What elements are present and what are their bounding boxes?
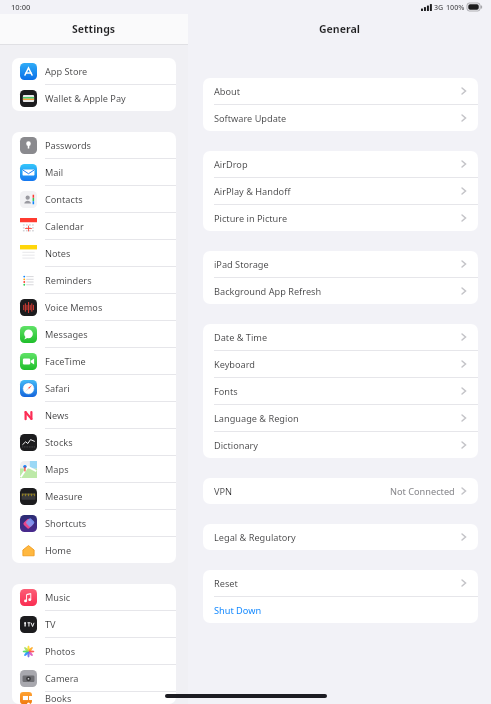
staticText: Mail xyxy=(45,166,64,179)
staticText: Voice Memos xyxy=(45,301,103,314)
button[interactable]: About xyxy=(203,78,478,104)
button[interactable]: Fonts xyxy=(203,378,478,404)
staticText: FaceTime xyxy=(45,355,86,368)
button[interactable]: Language & Region xyxy=(203,405,478,431)
staticText: Camera xyxy=(45,672,79,685)
staticText: Dictionary xyxy=(214,439,259,452)
button[interactable]: Safari xyxy=(12,375,176,401)
button[interactable]: Software Update xyxy=(203,105,478,131)
button[interactable]: Passwords xyxy=(12,132,176,158)
staticText: 10:00 xyxy=(11,2,31,12)
staticText: Maps xyxy=(45,463,69,476)
other: Home indicator xyxy=(165,694,327,698)
staticText: Messages xyxy=(45,328,88,341)
staticText: VPN xyxy=(214,485,233,498)
staticText: Legal & Regulatory xyxy=(214,531,296,544)
staticText: Books xyxy=(45,692,72,704)
staticText: About xyxy=(214,85,241,98)
button[interactable]: TV xyxy=(12,611,176,637)
staticText: Photos xyxy=(45,645,76,658)
staticText: Not Connected xyxy=(390,485,455,498)
staticText: App Store xyxy=(45,65,88,78)
button[interactable]: AirPlay & Handoff xyxy=(203,178,478,204)
staticText: Measure xyxy=(45,490,83,503)
staticText: Reset xyxy=(214,577,238,590)
button[interactable]: Contacts xyxy=(12,186,176,212)
staticText: General xyxy=(319,22,360,36)
staticText: Software Update xyxy=(214,112,287,125)
staticText: 3G xyxy=(434,2,444,12)
button[interactable]: Books xyxy=(12,692,176,704)
button[interactable]: Measure xyxy=(12,483,176,509)
button[interactable]: Dictionary xyxy=(203,432,478,458)
staticText: Fonts xyxy=(214,385,238,398)
staticText: Keyboard xyxy=(214,358,255,371)
staticText: Settings xyxy=(72,22,116,36)
staticText: Reminders xyxy=(45,274,92,287)
staticText: Language & Region xyxy=(214,412,299,425)
staticText: Home xyxy=(45,544,72,557)
staticText: Wallet & Apple Pay xyxy=(45,92,126,105)
button[interactable]: Stocks xyxy=(12,429,176,455)
staticText: Picture in Picture xyxy=(214,212,288,225)
button[interactable]: Reminders xyxy=(12,267,176,293)
button[interactable]: Picture in Picture xyxy=(203,205,478,231)
button[interactable]: Date & Time xyxy=(203,324,478,350)
button[interactable]: VPN xyxy=(203,478,478,504)
button[interactable]: Reset xyxy=(203,570,478,596)
staticText: Date & Time xyxy=(214,331,268,344)
button[interactable]: Mail xyxy=(12,159,176,185)
button[interactable]: Camera xyxy=(12,665,176,691)
staticText: AirDrop xyxy=(214,158,248,171)
staticText: 100% xyxy=(446,2,465,12)
button[interactable]: Wallet & Apple Pay xyxy=(12,85,176,111)
button[interactable]: Shortcuts xyxy=(12,510,176,536)
button[interactable]: Maps xyxy=(12,456,176,482)
button[interactable]: Keyboard xyxy=(203,351,478,377)
button[interactable]: App Store xyxy=(12,58,176,84)
staticText: Safari xyxy=(45,382,70,395)
staticText: TV xyxy=(45,618,56,631)
button[interactable]: Voice Memos xyxy=(12,294,176,320)
button[interactable]: Music xyxy=(12,584,176,610)
button[interactable]: Messages xyxy=(12,321,176,347)
button[interactable]: Shut Down xyxy=(203,597,478,623)
button[interactable]: Photos xyxy=(12,638,176,664)
button[interactable]: Calendar xyxy=(12,213,176,239)
staticText: Passwords xyxy=(45,139,91,152)
staticText: Contacts xyxy=(45,193,83,206)
button[interactable]: Notes xyxy=(12,240,176,266)
staticText: iPad Storage xyxy=(214,258,269,271)
staticText: Calendar xyxy=(45,220,84,233)
button[interactable]: Background App Refresh xyxy=(203,278,478,304)
button[interactable]: AirDrop xyxy=(203,151,478,177)
button[interactable]: Home xyxy=(12,537,176,563)
button[interactable]: FaceTime xyxy=(12,348,176,374)
staticText: Stocks xyxy=(45,436,73,449)
staticText: Background App Refresh xyxy=(214,285,322,298)
staticText: Music xyxy=(45,591,71,604)
staticText: Shortcuts xyxy=(45,517,87,530)
staticText: Notes xyxy=(45,247,71,260)
button[interactable]: News xyxy=(12,402,176,428)
button[interactable]: Legal & Regulatory xyxy=(203,524,478,550)
staticText: News xyxy=(45,409,69,422)
staticText: Shut Down xyxy=(214,604,262,617)
staticText: AirPlay & Handoff xyxy=(214,185,291,198)
button[interactable]: iPad Storage xyxy=(203,251,478,277)
